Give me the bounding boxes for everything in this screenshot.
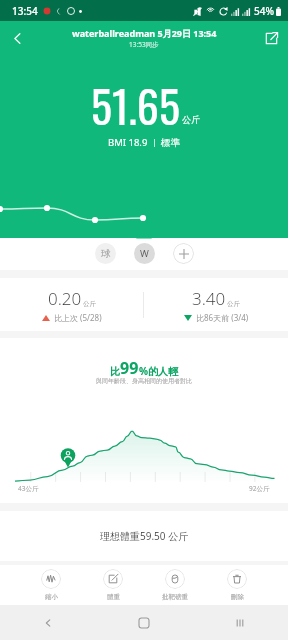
button[interactable]: Recent apps xyxy=(192,605,288,640)
button[interactable]: Back xyxy=(0,605,96,640)
button[interactable]: Back xyxy=(0,21,34,55)
staticText: 99 xyxy=(120,357,139,379)
button[interactable] xyxy=(173,243,194,264)
staticText: 比上次 (5/28) xyxy=(54,312,102,323)
staticText: 公斤 xyxy=(227,300,240,308)
staticText: waterballreadman 5月29日 13:54 xyxy=(72,27,217,39)
button[interactable]: W xyxy=(134,243,155,264)
button[interactable]: 理想體重59.50 公斤 xyxy=(0,511,288,561)
staticText: 比 xyxy=(110,365,120,378)
staticText: 與同年齡段、身高相同的使用者對比 xyxy=(96,377,192,385)
staticText: W xyxy=(140,247,149,260)
staticText: 刪除 xyxy=(231,593,244,601)
button[interactable]: 球 xyxy=(95,243,116,264)
staticText: 標準 xyxy=(161,137,180,149)
staticText: 13:53同步 xyxy=(129,40,159,49)
button[interactable]: 體重 xyxy=(82,569,144,601)
staticText: BMI 18.9 xyxy=(108,136,148,149)
staticText: 球 xyxy=(101,248,111,260)
staticText: 3.40 xyxy=(192,287,226,310)
staticText: 體重 xyxy=(107,593,120,601)
staticText: 51.65 xyxy=(91,73,180,138)
staticText: 縮小 xyxy=(45,593,58,601)
staticText: %的人輕 xyxy=(139,364,179,378)
staticText: 54% xyxy=(254,4,274,18)
staticText: 公斤 xyxy=(83,300,96,308)
staticText: 批靶磅重 xyxy=(162,593,188,601)
button[interactable]: 縮小 xyxy=(20,569,82,601)
staticText: 92公斤 xyxy=(249,484,270,493)
button[interactable]: 3.40 xyxy=(144,287,288,323)
staticText: 43公斤 xyxy=(18,484,39,493)
staticText: 公斤 xyxy=(182,114,200,125)
button[interactable]: 0.20 xyxy=(0,287,143,323)
staticText: 比86天前 (3/4) xyxy=(196,312,249,323)
staticText: 13:54 xyxy=(12,4,38,18)
button[interactable]: 刪除 xyxy=(206,569,268,601)
staticText: 0.20 xyxy=(48,287,82,310)
button[interactable]: 批靶磅重 xyxy=(144,569,206,601)
button[interactable]: Home xyxy=(96,605,192,640)
button[interactable]: Share xyxy=(254,21,288,55)
staticText: 理想體重59.50 公斤 xyxy=(100,529,189,543)
